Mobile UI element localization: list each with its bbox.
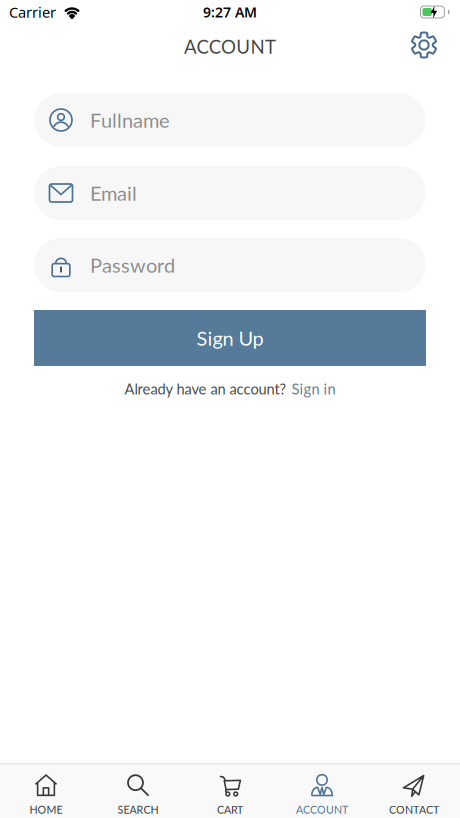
staticText: Sign in [291,380,335,398]
staticText: CONTACT [389,803,439,816]
staticText: 9:27 AM [203,2,257,22]
staticText: Already have an account? [124,380,286,398]
staticText: Fullname [90,108,170,132]
button[interactable]: Settings [407,28,440,61]
button[interactable]: CONTACT [368,774,460,816]
staticText: ACCOUNT [184,35,276,58]
staticText: Carrier [9,2,56,22]
button[interactable]: Sign in [291,380,335,398]
staticText: Sign Up [196,326,263,350]
staticText: SEARCH [117,803,158,816]
staticText: ACCOUNT [296,803,348,816]
button[interactable]: SEARCH [92,774,184,816]
button[interactable]: Fullname [34,93,426,147]
staticText: Email [90,181,137,205]
staticText: Password [90,253,175,277]
button[interactable]: ACCOUNT [276,774,368,816]
button[interactable]: CART [184,774,276,816]
staticText: CART [217,803,243,816]
staticText: HOME [29,803,62,816]
button[interactable]: Sign Up [34,310,426,366]
button[interactable]: Password [34,238,426,292]
button[interactable]: HOME [0,774,92,816]
button[interactable]: Email [34,166,426,220]
